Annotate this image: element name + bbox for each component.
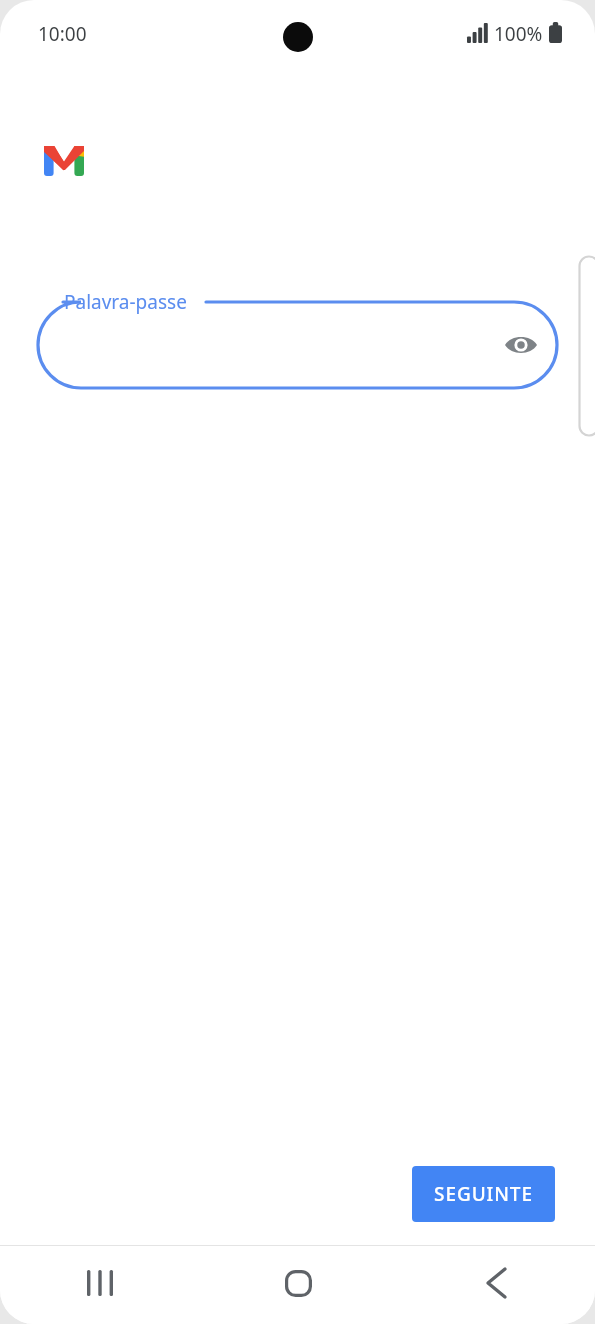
button[interactable]: Voltar <box>397 1246 595 1324</box>
button[interactable]: Início <box>199 1246 397 1324</box>
staticText: Palavra-passe <box>64 289 187 315</box>
staticText: 10:00 <box>38 21 87 47</box>
button[interactable]: Recentes <box>0 1246 199 1324</box>
button[interactable]: Palavra-passe <box>38 302 557 388</box>
staticText: 100% <box>494 21 543 47</box>
staticText: SEGUINTE <box>434 1181 533 1207</box>
button[interactable]: SEGUINTE <box>412 1166 555 1222</box>
button[interactable]: Mostrar palavra-passe <box>495 319 547 371</box>
